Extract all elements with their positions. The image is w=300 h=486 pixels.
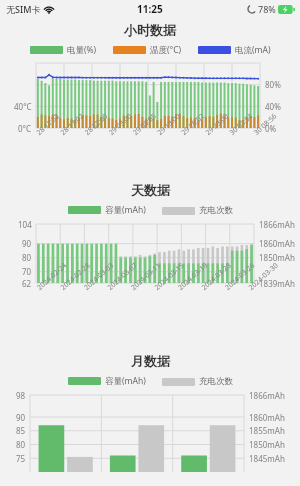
staticText: 容量(mAh): [105, 375, 146, 387]
staticText: 11:25: [137, 2, 163, 16]
button[interactable]: 容量(mAh): [67, 374, 147, 388]
staticText: 容量(mAh): [105, 204, 146, 216]
button[interactable]: 温度(°C): [112, 43, 183, 57]
staticText: 温度(°C): [150, 44, 182, 56]
staticText: 充电次数: [199, 376, 233, 387]
staticText: 月数据: [131, 353, 170, 369]
button[interactable]: 电流(mA): [197, 43, 272, 57]
button[interactable]: 月数据图表: [0, 392, 300, 472]
staticText: 78%: [258, 3, 276, 15]
staticText: 电流(mA): [235, 44, 271, 56]
staticText: 天数据: [131, 182, 170, 198]
staticText: 无SIM卡: [6, 3, 41, 15]
button[interactable]: 充电次数: [161, 204, 234, 217]
button[interactable]: 天数据图表: [0, 221, 300, 339]
button[interactable]: 充电次数: [161, 375, 234, 388]
button[interactable]: 小时数据图表: [0, 60, 300, 170]
staticText: 充电次数: [199, 205, 233, 216]
staticText: 电量(%): [67, 44, 97, 56]
button[interactable]: 电量(%): [29, 43, 98, 57]
button[interactable]: 容量(mAh): [67, 203, 147, 217]
staticText: 小时数据: [124, 22, 176, 38]
